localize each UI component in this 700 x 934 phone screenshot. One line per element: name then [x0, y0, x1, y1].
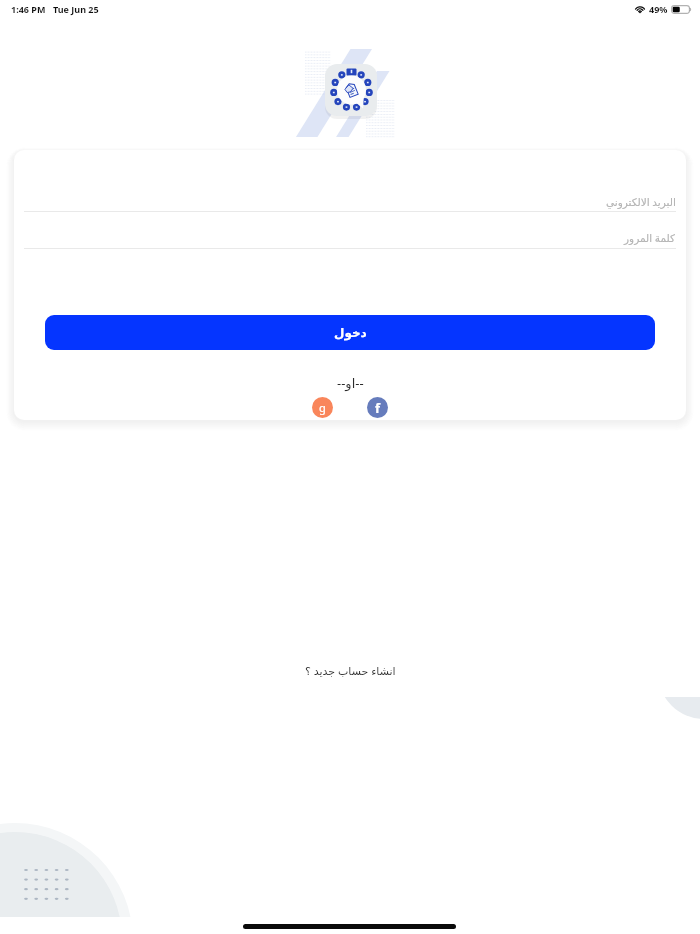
staticText: كلمة المرور	[624, 231, 676, 245]
staticText: دخول	[334, 326, 367, 340]
staticText: 49%	[649, 3, 668, 15]
button[interactable]: انشاء حساب جديد ؟	[295, 659, 406, 682]
button[interactable]: Sign in with Facebook	[367, 397, 388, 418]
staticText: 1:46 PM	[11, 3, 46, 15]
staticText: Tue Jun 25	[53, 3, 99, 15]
staticText: g	[319, 400, 326, 415]
staticText: انشاء حساب جديد ؟	[305, 663, 396, 678]
button[interactable]: كلمة المرور	[24, 227, 676, 249]
staticText: --او--	[337, 374, 364, 392]
staticText: f	[375, 399, 381, 417]
button[interactable]: Sign in with Google	[312, 397, 333, 418]
button[interactable]: البريد الالكتروني	[24, 191, 676, 213]
staticText: البريد الالكتروني	[606, 195, 676, 209]
button[interactable]: دخول	[45, 315, 655, 350]
